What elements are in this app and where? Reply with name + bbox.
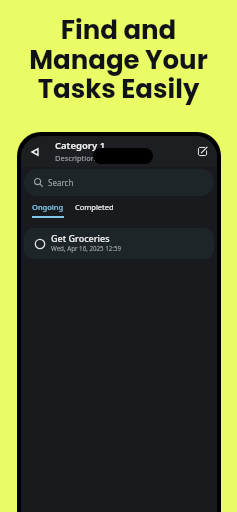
button[interactable]: Completed <box>73 202 116 212</box>
staticText: Get Groceries <box>51 232 110 244</box>
button[interactable]: Get Groceries <box>24 228 214 259</box>
button[interactable]: Ongoing <box>30 202 66 218</box>
staticText: Wed, Apr 16, 2025 12:59 <box>51 244 122 252</box>
staticText: Category 1 <box>55 139 106 152</box>
staticText: Find and Manage Your Tasks Easily <box>0 12 237 107</box>
staticText: Search <box>48 177 74 188</box>
button[interactable]: Back <box>27 144 43 160</box>
staticText: Ongoing <box>32 202 64 212</box>
staticText: Completed <box>75 202 114 212</box>
staticText: Description <box>55 153 96 163</box>
button[interactable]: Search <box>24 169 214 196</box>
button[interactable]: Edit <box>193 142 211 160</box>
